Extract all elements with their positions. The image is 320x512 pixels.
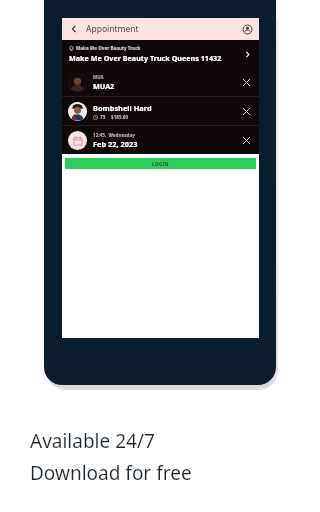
button[interactable]: Make Me Over Beauty Truck — [62, 40, 259, 68]
button[interactable]: Remove — [238, 103, 254, 119]
staticText: 12:45, Wednesday — [93, 132, 135, 138]
button[interactable]: 12:45, Wednesday — [62, 126, 259, 154]
staticText: Bombshell Hard — [93, 103, 152, 113]
staticText: Available 24/7 — [30, 428, 155, 454]
staticText: $185.00 — [111, 114, 129, 120]
staticText: LOGIN — [152, 161, 169, 167]
staticText: MUA — [93, 74, 104, 80]
staticText: Appointment — [86, 23, 139, 35]
staticText: Make Me Over Beauty Truck — [76, 45, 141, 51]
button[interactable]: Back — [66, 21, 82, 37]
button[interactable]: Bombshell Hard — [62, 97, 259, 125]
staticText: 75 — [100, 114, 106, 120]
button[interactable]: LOGIN — [65, 158, 256, 169]
staticText: Feb 22, 2023 — [93, 139, 138, 149]
staticText: MUA2 — [93, 81, 115, 91]
button[interactable]: Remove — [238, 132, 254, 148]
button[interactable]: MUA — [62, 68, 259, 96]
button[interactable]: Account — [240, 22, 254, 36]
button[interactable]: Remove — [238, 74, 254, 90]
staticText: Make Me Over Beauty Truck Queens 11432 — [69, 53, 222, 63]
staticText: Download for free — [30, 460, 192, 486]
other: Open venue — [241, 48, 253, 60]
